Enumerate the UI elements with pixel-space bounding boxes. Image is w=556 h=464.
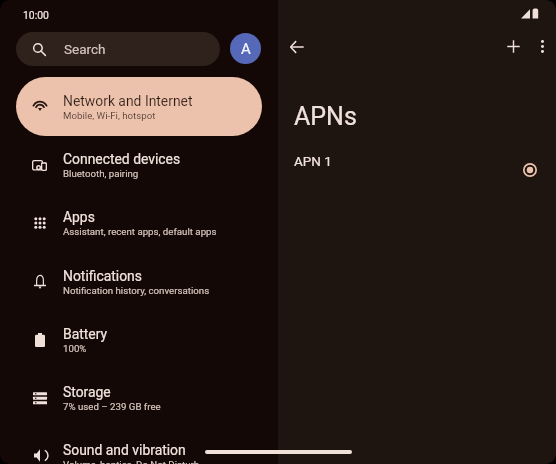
staticText: 10:00 [23,9,49,21]
button[interactable]: Account [230,33,261,64]
staticText: Bluetooth, pairing [63,168,139,179]
staticText: Apps [63,209,95,225]
staticText: Connected devices [63,151,181,167]
button[interactable]: Connected devices [16,135,262,194]
staticText: Notifications [63,268,142,284]
staticText: Volume, haptics, Do Not Disturb [63,459,200,464]
staticText: Network and Internet [63,93,193,109]
button[interactable]: Notifications [16,252,262,311]
button[interactable]: Back [278,28,315,65]
staticText: A [241,40,251,58]
button[interactable]: Search [16,32,220,66]
button[interactable]: Add APN [495,28,532,65]
staticText: Sound and vibration [63,442,186,458]
staticText: APNs [294,102,357,131]
staticText: APN 1 [294,153,332,169]
staticText: 7% used – 239 GB free [63,401,161,412]
staticText: Battery [63,326,108,342]
button[interactable]: Apps [16,193,262,252]
staticText: Storage [63,384,111,400]
staticText: Notification history, conversations [63,285,210,296]
button[interactable]: Network and Internet [16,77,262,136]
button[interactable]: Battery [16,310,262,369]
button[interactable]: Sound and vibration [16,426,262,464]
staticText: Search [64,41,106,57]
staticText: 100% [63,343,87,354]
staticText: Mobile, Wi-Fi, hotspot [63,110,156,121]
button[interactable]: Storage [16,368,262,427]
staticText: Assistant, recent apps, default apps [63,226,217,237]
button[interactable]: APN 1 [278,144,556,190]
button[interactable]: More options [524,28,556,65]
